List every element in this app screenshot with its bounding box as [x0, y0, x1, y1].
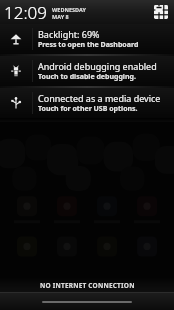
button[interactable]: Android debugging: [0, 56, 174, 86]
staticText: Android debugging enabled: [38, 60, 157, 72]
staticText: WEDNESDAY: [52, 6, 86, 13]
button[interactable]: Close notification shade: [0, 293, 174, 310]
staticText: Press to open the Dashboard: [38, 40, 139, 50]
button[interactable]: Quick settings: [152, 3, 170, 21]
staticText: Touch to disable debugging.: [38, 72, 136, 82]
button[interactable]: Backlight: [0, 24, 174, 54]
staticText: NO INTERNET CONNECTION: [40, 281, 135, 290]
staticText: 12:09: [4, 1, 47, 24]
staticText: Touch for other USB options.: [38, 104, 138, 114]
staticText: MAY 8: [52, 13, 69, 20]
button[interactable]: USB connection: [0, 88, 174, 118]
staticText: Connected as a media device: [38, 92, 161, 104]
staticText: Backlight: 69%: [38, 28, 100, 40]
